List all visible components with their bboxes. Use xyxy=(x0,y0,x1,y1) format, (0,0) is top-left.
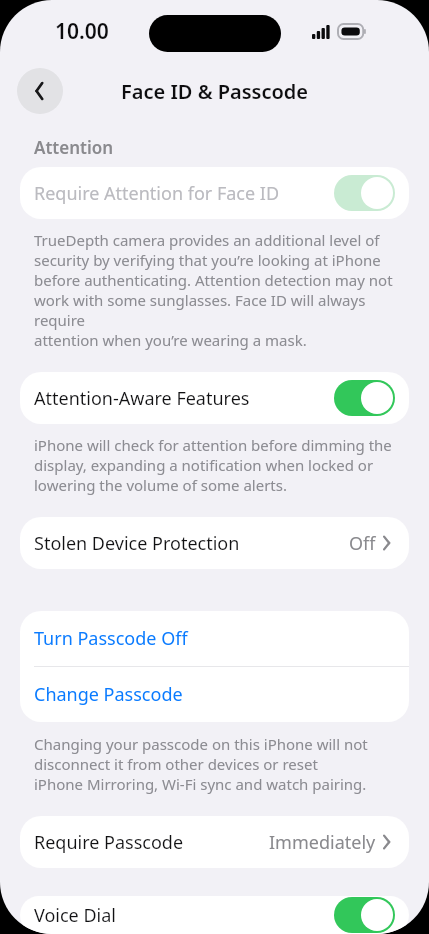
button[interactable]: Turn Passcode Off xyxy=(20,611,409,666)
staticText: 10.00 xyxy=(55,17,109,46)
staticText: Stolen Device Protection xyxy=(34,531,240,556)
staticText: Require Passcode xyxy=(34,830,184,855)
button[interactable]: Stolen Device Protection xyxy=(20,517,409,569)
staticText: Immediately xyxy=(269,830,376,855)
staticText: Voice Dial xyxy=(34,903,116,928)
button[interactable]: Change Passcode xyxy=(20,667,409,722)
staticText: Attention xyxy=(34,136,114,159)
staticText: TrueDepth camera provides an additional … xyxy=(34,230,409,350)
button[interactable]: Back xyxy=(17,68,63,114)
staticText: iPhone will check for attention before d… xyxy=(34,435,392,495)
button[interactable]: Toggle switch xyxy=(334,380,395,416)
staticText: Face ID & Passcode xyxy=(121,78,309,105)
staticText: Off xyxy=(349,531,376,556)
staticText: Change Passcode xyxy=(34,682,183,707)
staticText: Attention-Aware Features xyxy=(34,386,250,411)
button[interactable]: Require Passcode xyxy=(20,816,409,868)
staticText: Turn Passcode Off xyxy=(34,626,188,651)
button[interactable]: Attention-Aware Features xyxy=(20,372,409,424)
button[interactable]: Toggle switch xyxy=(334,175,395,211)
staticText: Require Attention for Face ID xyxy=(34,181,280,206)
button[interactable]: Voice Dial xyxy=(20,896,409,934)
button[interactable]: Toggle switch xyxy=(334,897,395,933)
staticText: Changing your passcode on this iPhone wi… xyxy=(34,734,368,794)
button[interactable]: Require Attention for Face ID xyxy=(20,167,409,219)
